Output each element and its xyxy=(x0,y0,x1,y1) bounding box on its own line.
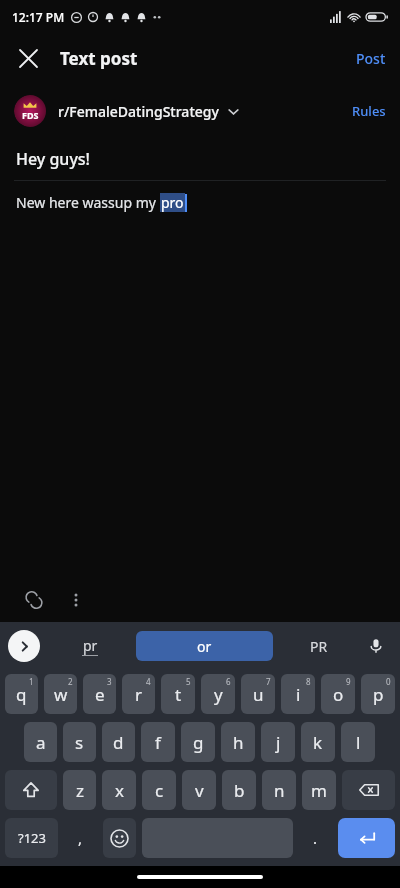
staticText: Rules xyxy=(352,102,386,120)
staticText: h xyxy=(233,731,244,754)
staticText: 12:17 PM xyxy=(12,9,65,25)
staticText: w xyxy=(54,683,68,706)
staticText: a xyxy=(36,731,46,754)
staticText: New here wassup my xyxy=(16,193,160,212)
button[interactable]: pr xyxy=(44,636,136,656)
staticText: s xyxy=(75,731,84,754)
button[interactable]: Shift xyxy=(5,770,57,810)
button[interactable]: Post xyxy=(342,41,400,76)
staticText: Post xyxy=(356,49,386,68)
staticText: f xyxy=(155,731,161,754)
button[interactable]: More options xyxy=(60,584,92,616)
button[interactable]: z xyxy=(63,770,96,810)
staticText: t xyxy=(175,683,182,706)
button[interactable]: f xyxy=(141,722,175,762)
button[interactable]: d xyxy=(102,722,135,762)
staticText: 8 xyxy=(306,676,311,687)
button[interactable]: Expand toolbar xyxy=(8,630,40,662)
button[interactable]: x xyxy=(102,770,136,810)
button[interactable]: g xyxy=(181,722,215,762)
staticText: Hey guys! xyxy=(16,148,90,170)
staticText: 7 xyxy=(266,676,271,687)
button[interactable]: k xyxy=(301,722,335,762)
button[interactable]: s xyxy=(63,722,96,762)
button[interactable]: l xyxy=(341,722,375,762)
staticText: n xyxy=(274,779,285,802)
staticText: PR xyxy=(310,637,328,656)
staticText: u xyxy=(253,683,264,706)
staticText: 6 xyxy=(226,676,231,687)
button[interactable]: n xyxy=(262,770,296,810)
staticText: 0 xyxy=(386,676,391,687)
button[interactable]: New here wassup my xyxy=(16,193,384,212)
staticText: x xyxy=(115,779,124,802)
button[interactable]: Emoji xyxy=(103,818,136,858)
staticText: k xyxy=(313,731,323,754)
button[interactable]: j xyxy=(261,722,295,762)
button[interactable]: PR xyxy=(273,637,364,656)
staticText: g xyxy=(193,731,204,754)
button[interactable]: FDS xyxy=(14,95,240,127)
button[interactable]: Close xyxy=(8,38,48,78)
button[interactable]: r xyxy=(122,674,155,714)
button[interactable]: Hey guys! xyxy=(16,148,384,170)
staticText: ?123 xyxy=(18,829,46,847)
button[interactable]: Enter xyxy=(338,818,395,858)
button[interactable]: b xyxy=(222,770,256,810)
staticText: FDS xyxy=(22,109,39,121)
button[interactable]: m xyxy=(302,770,336,810)
staticText: pr xyxy=(83,636,98,655)
button[interactable]: h xyxy=(221,722,255,762)
staticText: v xyxy=(195,779,204,802)
button[interactable]: y xyxy=(201,674,235,714)
button[interactable]: Rules xyxy=(338,94,400,128)
button[interactable]: o xyxy=(321,674,355,714)
button[interactable]: . xyxy=(299,818,332,858)
button[interactable]: Add link xyxy=(18,584,50,616)
button[interactable]: , xyxy=(64,818,97,858)
staticText: Text post xyxy=(60,47,138,70)
button[interactable]: or xyxy=(136,631,273,661)
button[interactable]: w xyxy=(44,674,77,714)
button[interactable]: a xyxy=(24,722,57,762)
staticText: q xyxy=(16,683,27,706)
staticText: 9 xyxy=(346,676,351,687)
staticText: j xyxy=(276,731,281,754)
staticText: d xyxy=(113,731,124,754)
staticText: . xyxy=(313,828,318,848)
button[interactable]: Voice input xyxy=(360,630,392,662)
staticText: 3 xyxy=(107,676,112,687)
staticText: 4 xyxy=(146,676,151,687)
staticText: pro xyxy=(161,193,184,212)
staticText: l xyxy=(356,731,361,754)
staticText: p xyxy=(373,683,384,706)
staticText: 2 xyxy=(68,676,73,687)
staticText: y xyxy=(214,683,223,706)
staticText: r xyxy=(135,683,143,706)
staticText: b xyxy=(234,779,245,802)
button[interactable]: ?123 xyxy=(5,818,58,858)
staticText: r/FemaleDatingStrategy xyxy=(58,102,219,121)
button[interactable]: v xyxy=(182,770,216,810)
staticText: m xyxy=(311,779,327,802)
staticText: e xyxy=(95,683,105,706)
button[interactable]: p xyxy=(361,674,395,714)
staticText: 5 xyxy=(186,676,191,687)
button[interactable]: t xyxy=(161,674,195,714)
button[interactable]: u xyxy=(241,674,275,714)
button[interactable]: e xyxy=(83,674,116,714)
button[interactable]: c xyxy=(142,770,176,810)
button[interactable]: i xyxy=(281,674,315,714)
staticText: , xyxy=(78,828,83,848)
staticText: or xyxy=(197,637,212,656)
button[interactable]: q xyxy=(5,674,38,714)
staticText: o xyxy=(333,683,344,706)
staticText: z xyxy=(76,779,84,802)
staticText: 1 xyxy=(29,676,34,687)
staticText: i xyxy=(296,683,301,706)
staticText: c xyxy=(155,779,164,802)
button[interactable]: Backspace xyxy=(342,770,395,810)
